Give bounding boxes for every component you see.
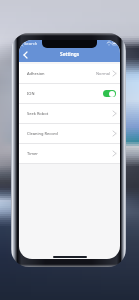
staticText: Settings <box>60 51 80 58</box>
button[interactable]: Timer <box>19 144 120 164</box>
staticText: Search <box>24 41 38 47</box>
staticText: Timer <box>27 151 38 156</box>
button[interactable]: Back <box>19 47 32 62</box>
button[interactable]: Seek Robot <box>19 104 120 124</box>
staticText: Adhesion <box>27 71 45 76</box>
button[interactable]: Adhesion <box>19 64 120 84</box>
staticText: Cleaning Record <box>27 131 58 136</box>
staticText: Seek Robot <box>27 111 49 116</box>
staticText: ION <box>27 91 35 96</box>
button[interactable]: Cleaning Record <box>19 124 120 144</box>
staticText: Normal <box>96 71 111 76</box>
button[interactable]: ION <box>19 84 120 104</box>
